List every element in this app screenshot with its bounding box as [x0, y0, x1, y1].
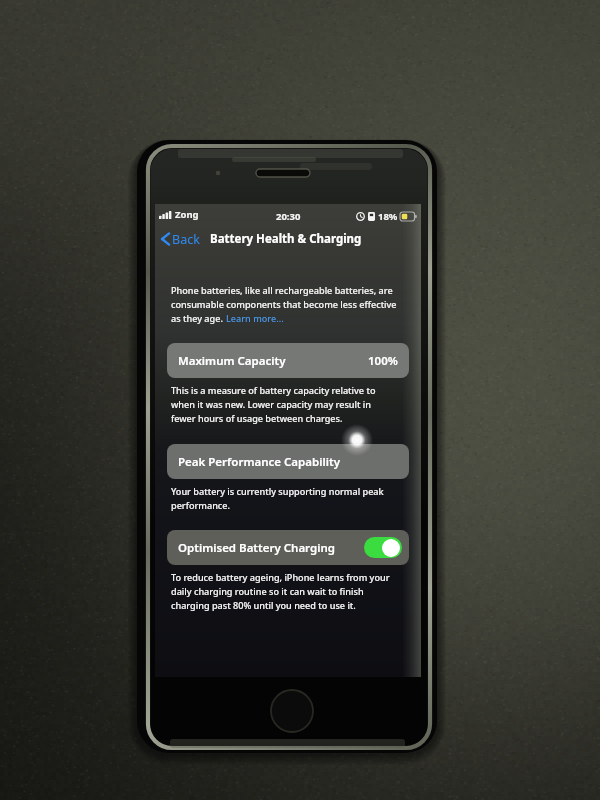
staticText: Maximum Capacity [178, 353, 286, 369]
button[interactable]: Back [160, 229, 201, 248]
staticText: This is a measure of battery capacity re… [171, 384, 376, 396]
staticText: Your battery is currently supporting nor… [171, 485, 384, 497]
staticText: Peak Performance Capability [178, 454, 340, 470]
staticText: 100% [368, 353, 398, 369]
button[interactable]: Learn more... [226, 312, 284, 324]
staticText: Back [172, 231, 200, 246]
staticText: Optimised Battery Charging [178, 540, 335, 556]
staticText: Battery Health & Charging [210, 231, 362, 247]
staticText: when it was new. Lower capacity may resu… [171, 398, 372, 410]
button[interactable]: Optimised Battery Charging [167, 530, 409, 565]
staticText: as they age. [171, 312, 223, 324]
button[interactable]: Peak Performance Capability [167, 444, 409, 479]
staticText: charging past 80% until you need to use … [171, 599, 356, 611]
staticText: To reduce battery ageing, iPhone learns … [171, 571, 390, 583]
button[interactable]: Maximum Capacity [167, 343, 409, 378]
staticText: daily charging routine so it can wait to… [171, 585, 364, 597]
staticText: 20:30 [276, 210, 301, 223]
staticText: fewer hours of usage between charges. [171, 412, 343, 424]
staticText: 18% [378, 210, 398, 223]
staticText: consumable components that become less e… [171, 298, 397, 310]
button[interactable]: Optimised Battery Charging toggle [364, 537, 402, 558]
staticText: performance. [171, 499, 231, 511]
staticText: Phone batteries, like all rechargeable b… [171, 284, 393, 296]
staticText: Zong [175, 208, 199, 221]
